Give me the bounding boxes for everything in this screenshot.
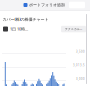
staticText: 3,013.5 (73, 63, 85, 67)
staticText: テクニカル… (65, 27, 82, 31)
staticText: 3,500 (76, 50, 85, 53)
button[interactable]: 1日 10時… (3, 26, 28, 32)
button[interactable]: テクニカル… (61, 26, 86, 32)
button[interactable]: ポートフォリオ追加 (23, 2, 65, 7)
staticText: 1日 10時… (10, 26, 28, 32)
staticText: カバー(株)の株価チャート (2, 16, 48, 22)
staticText: ポートフォリオ追加 (29, 2, 65, 7)
staticText: 3,000 (76, 77, 85, 81)
